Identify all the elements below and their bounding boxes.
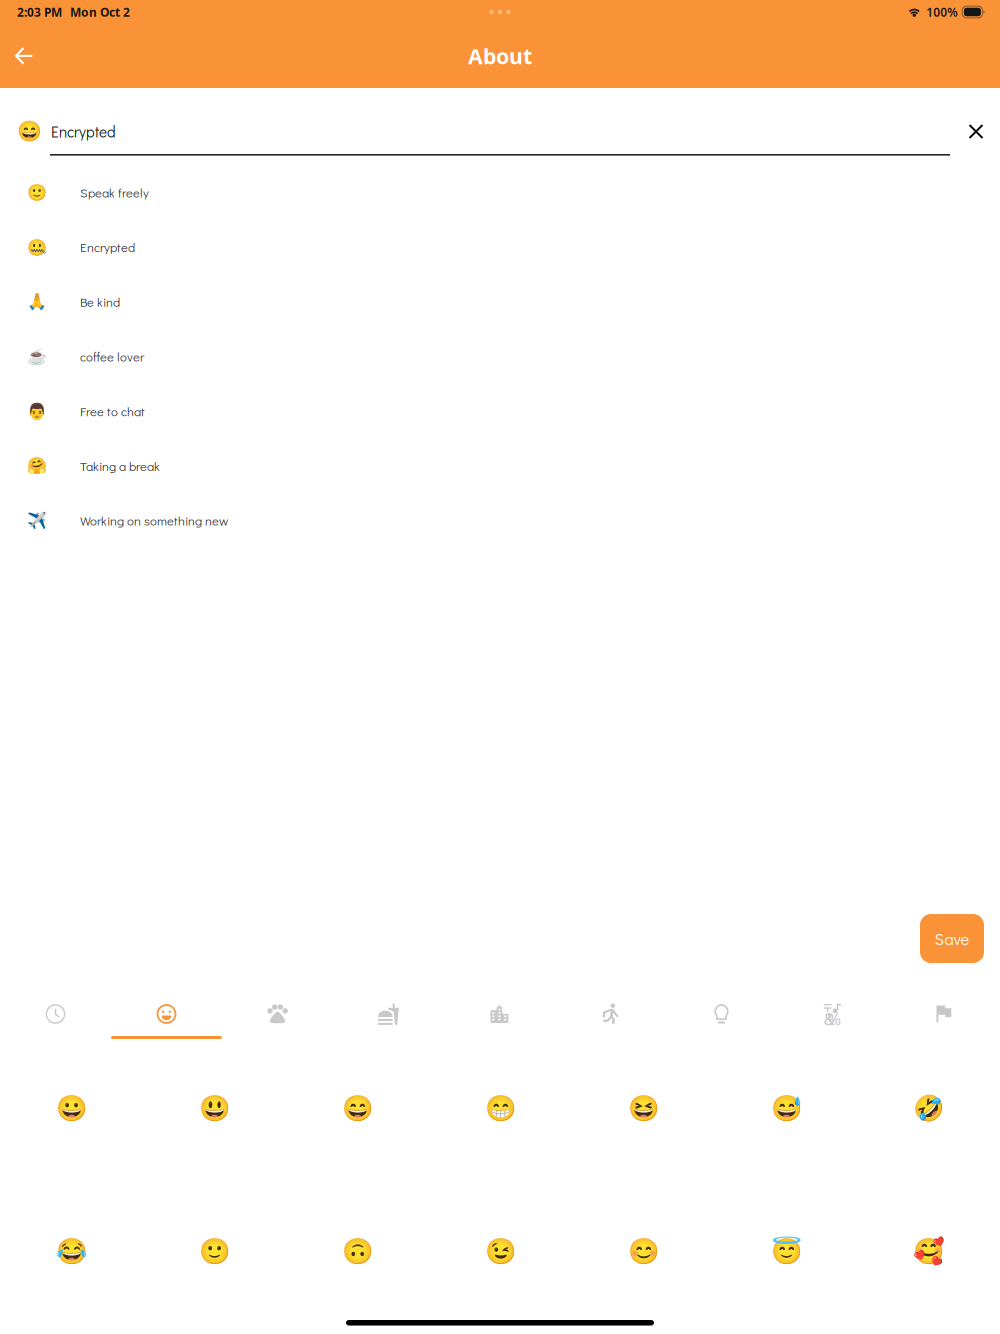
- button[interactable]: Clear status: [954, 115, 998, 148]
- button[interactable]: Flags: [888, 987, 1000, 1047]
- button[interactable]: 🙂: [143, 1215, 286, 1287]
- staticText: 😆: [627, 1093, 659, 1122]
- staticText: 🙏: [26, 293, 46, 311]
- button[interactable]: 👨: [0, 384, 1000, 438]
- button[interactable]: ☕: [0, 329, 1000, 384]
- button[interactable]: 🥰: [858, 1215, 1000, 1287]
- staticText: 😄: [341, 1093, 373, 1122]
- staticText: Save: [934, 928, 969, 949]
- staticText: 😃: [198, 1093, 230, 1122]
- staticText: %: [827, 1008, 841, 1030]
- staticText: 🤐: [26, 238, 46, 256]
- staticText: coffee lover: [80, 348, 144, 365]
- staticText: 😄: [17, 120, 42, 143]
- button[interactable]: Travel and places: [444, 987, 555, 1047]
- button[interactable]: 🤐: [0, 220, 1000, 274]
- button[interactable]: 😀: [0, 1072, 143, 1144]
- button[interactable]: 🙃: [286, 1215, 429, 1287]
- staticText: 🤣: [913, 1093, 945, 1122]
- button[interactable]: 😆: [572, 1072, 715, 1144]
- staticText: 😁: [484, 1093, 516, 1122]
- staticText: ✈️: [26, 511, 46, 530]
- button[interactable]: 😂: [0, 1215, 143, 1287]
- button[interactable]: Objects: [666, 987, 777, 1047]
- staticText: 100%: [926, 4, 958, 20]
- staticText: Working on something new: [80, 512, 228, 529]
- staticText: 🙂: [26, 183, 46, 201]
- staticText: Free to chat: [80, 403, 145, 420]
- staticText: 🙂: [198, 1236, 230, 1265]
- button[interactable]: ✈️: [0, 493, 1000, 548]
- button[interactable]: 😉: [429, 1215, 572, 1287]
- staticText: 🙃: [341, 1236, 373, 1265]
- staticText: 😅: [770, 1093, 802, 1122]
- staticText: Taking a break: [80, 457, 160, 474]
- staticText: 👨: [26, 402, 46, 420]
- button[interactable]: Activity: [555, 987, 666, 1047]
- button[interactable]: 😊: [572, 1215, 715, 1287]
- button[interactable]: Back: [0, 32, 48, 80]
- button[interactable]: Smileys and people: [111, 987, 222, 1047]
- staticText: Encrypted: [80, 239, 135, 256]
- button[interactable]: 😄: [286, 1072, 429, 1144]
- button[interactable]: 🙂: [0, 165, 1000, 220]
- button[interactable]: Food and drink: [333, 987, 444, 1047]
- button[interactable]: 🙏: [0, 274, 1000, 329]
- button[interactable]: Recently used: [0, 987, 111, 1047]
- staticText: 🤗: [26, 457, 46, 475]
- staticText: 😊: [627, 1236, 659, 1265]
- button[interactable]: Save: [920, 914, 984, 963]
- staticText: 😉: [484, 1236, 516, 1265]
- staticText: Be kind: [80, 293, 120, 310]
- button[interactable]: 😃: [143, 1072, 286, 1144]
- staticText: Encrypted: [51, 121, 116, 141]
- staticText: 😇: [770, 1236, 802, 1265]
- staticText: ☕: [26, 347, 46, 366]
- button[interactable]: 😁: [429, 1072, 572, 1144]
- staticText: About: [468, 41, 532, 71]
- staticText: 2:03 PM: [17, 4, 62, 20]
- button[interactable]: 😇: [715, 1215, 858, 1287]
- button[interactable]: 😅: [715, 1072, 858, 1144]
- staticText: Speak freely: [80, 184, 149, 201]
- button[interactable]: 🤗: [0, 438, 1000, 493]
- staticText: Mon Oct 2: [70, 4, 130, 20]
- staticText: 😂: [55, 1236, 87, 1265]
- button[interactable]: Animals and nature: [222, 987, 333, 1047]
- staticText: 🥰: [913, 1236, 945, 1265]
- staticText: &: [823, 1008, 835, 1030]
- staticText: 😀: [55, 1093, 87, 1122]
- button[interactable]: Symbols: [777, 987, 888, 1047]
- button[interactable]: 🤣: [858, 1072, 1000, 1144]
